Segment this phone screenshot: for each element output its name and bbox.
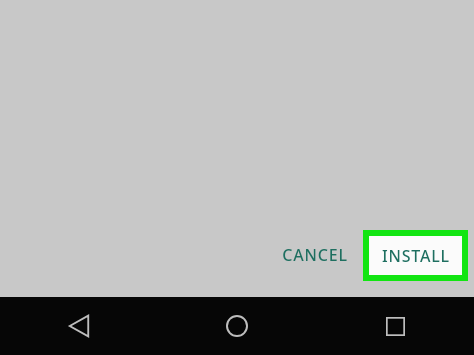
button[interactable]: Back <box>0 297 158 355</box>
staticText: INSTALL <box>382 245 450 267</box>
button[interactable]: Home <box>158 297 316 355</box>
staticText: CANCEL <box>282 244 348 266</box>
button[interactable]: INSTALL <box>369 236 462 275</box>
button[interactable]: Recent apps <box>316 297 474 355</box>
button[interactable]: CANCEL <box>278 240 352 270</box>
